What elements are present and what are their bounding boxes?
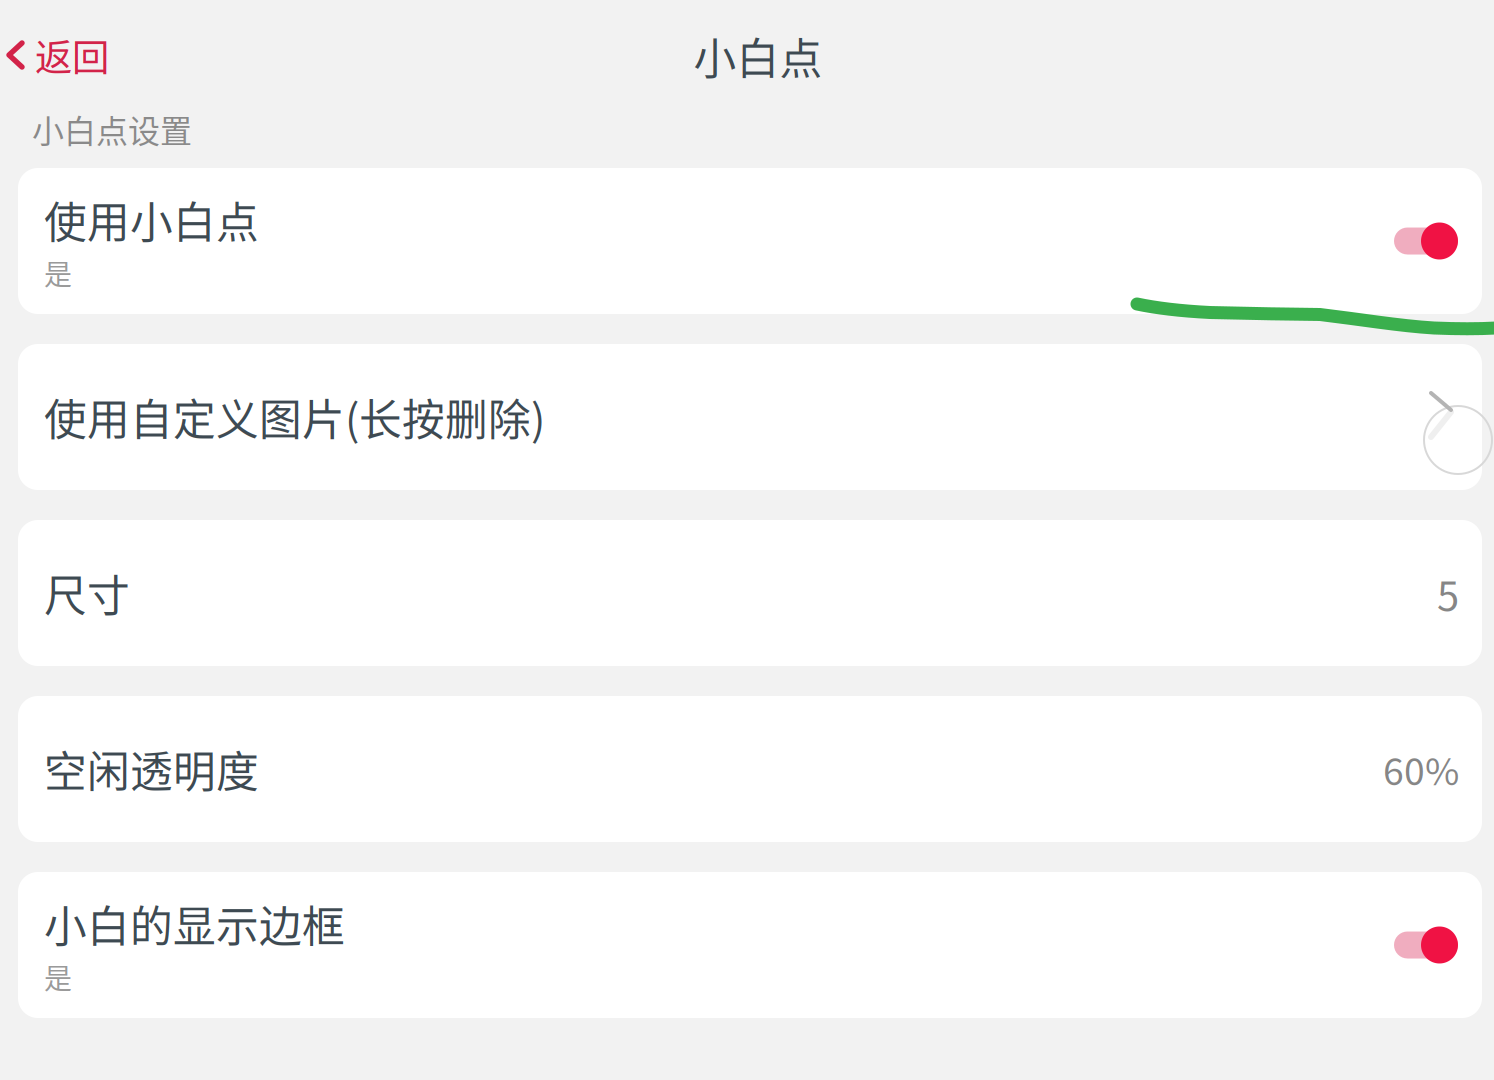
staticText: 小白的显示边框 [44, 893, 345, 955]
staticText: 是 [44, 253, 72, 293]
staticText: 小白点设置 [32, 106, 192, 152]
button[interactable]: 使用小白点 [18, 168, 1482, 314]
staticText: 是 [44, 957, 72, 997]
button[interactable]: 使用自定义图片(长按删除) [18, 344, 1482, 490]
staticText: 60% [1383, 742, 1459, 796]
staticText: 尺寸 [44, 562, 130, 624]
button[interactable]: 尺寸 [18, 520, 1482, 666]
button[interactable]: 空闲透明度 [18, 696, 1482, 842]
staticText: 空闲透明度 [44, 738, 259, 800]
staticText: 使用自定义图片(长按删除) [44, 386, 545, 448]
staticText: 小白点 [693, 25, 822, 87]
staticText: 返回 [35, 28, 109, 82]
staticText: 使用小白点 [44, 189, 259, 251]
staticText: 5 [1437, 564, 1459, 622]
button[interactable]: 返回 [0, 16, 109, 94]
button[interactable]: 小白的显示边框 [18, 872, 1482, 1018]
